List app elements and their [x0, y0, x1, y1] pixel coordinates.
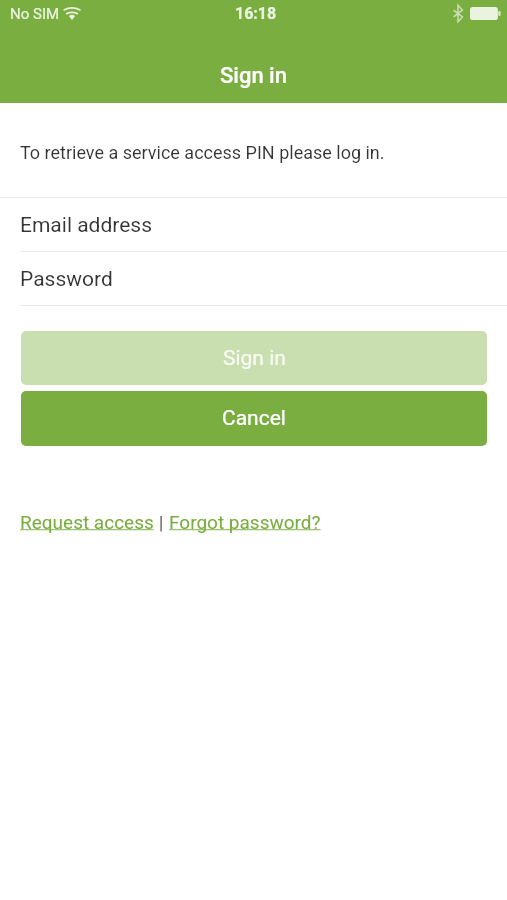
staticText: To retrieve a service access PIN please … [20, 142, 385, 163]
staticText: Sign in [223, 346, 286, 371]
other: Bluetooth [453, 5, 463, 22]
button[interactable]: Sign in [21, 331, 487, 385]
other: Battery [470, 7, 501, 20]
staticText: No SIM [10, 5, 60, 23]
staticText: | [154, 511, 169, 533]
button[interactable]: Email address [0, 198, 507, 252]
button[interactable]: Password [0, 252, 507, 306]
staticText: Forgot password? [169, 511, 321, 533]
other: Wi-Fi [64, 7, 80, 20]
staticText: Sign in [220, 63, 287, 89]
staticText: Email address [20, 213, 153, 238]
staticText: 16:18 [235, 4, 277, 23]
button[interactable]: Forgot password? [169, 511, 321, 533]
staticText: Password [20, 267, 113, 292]
button[interactable]: Request access [20, 511, 154, 533]
staticText: Request access [20, 511, 154, 533]
staticText: Cancel [222, 406, 286, 431]
button[interactable]: Cancel [21, 391, 487, 446]
